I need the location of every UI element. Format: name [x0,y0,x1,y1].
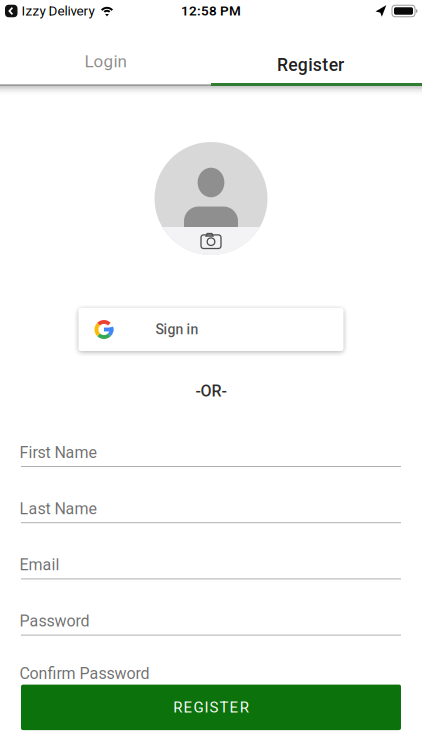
staticText: Last Name [19,499,96,518]
button[interactable]: Email [21,554,401,579]
staticText: Login [84,51,126,71]
staticText: Sign in [155,321,198,338]
staticText: Izzy Delivery [21,3,94,19]
button[interactable]: Password [21,611,401,636]
button[interactable]: Login [0,22,211,86]
staticText: -OR- [195,382,226,400]
staticText: REGISTER [173,699,249,716]
staticText: 12:58 PM [181,3,241,19]
staticText: Password [19,612,89,630]
staticText: Confirm Password [19,664,149,683]
button[interactable]: REGISTER [21,685,401,730]
button[interactable]: Register [211,22,422,86]
button[interactable]: Last Name [21,498,401,523]
button[interactable]: Confirm Password [21,664,151,682]
button[interactable]: Choose profile photo [154,142,267,255]
staticText: Register [277,55,344,75]
staticText: Email [19,555,59,574]
button[interactable]: First Name [21,442,401,467]
staticText: First Name [19,443,96,462]
button[interactable]: Sign in [78,308,343,351]
